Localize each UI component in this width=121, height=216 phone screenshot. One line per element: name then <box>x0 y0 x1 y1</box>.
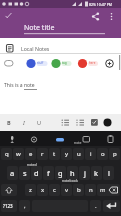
staticText: g <box>58 168 63 178</box>
staticText: tag <box>62 61 67 65</box>
button[interactable]: o <box>97 148 108 160</box>
staticText: notebook <box>62 178 78 183</box>
staticText: e <box>29 150 33 158</box>
staticText: p <box>113 150 117 158</box>
button[interactable] <box>103 200 120 212</box>
button[interactable]: y <box>61 148 72 160</box>
button[interactable]: n <box>85 184 96 196</box>
button[interactable]: v <box>61 184 72 196</box>
staticText: x <box>41 186 45 194</box>
staticText: h <box>70 168 75 178</box>
button[interactable]: p <box>109 148 120 160</box>
button[interactable]: t <box>49 148 60 160</box>
staticText: y <box>65 150 69 158</box>
button[interactable]: I <box>23 119 25 126</box>
staticText: stuff <box>37 61 44 65</box>
staticText: a <box>10 168 15 178</box>
button[interactable]: b <box>73 184 84 196</box>
staticText: s <box>23 168 27 178</box>
button[interactable]: w <box>13 148 24 160</box>
staticText: r <box>41 150 44 158</box>
button[interactable]: l <box>103 166 114 180</box>
button[interactable] <box>105 184 120 196</box>
button[interactable]: s <box>19 166 30 180</box>
button[interactable]: g <box>55 166 66 180</box>
button[interactable]: c <box>49 184 60 196</box>
staticText: f <box>47 168 50 178</box>
button[interactable]: a <box>7 166 18 180</box>
staticText: Local Notes <box>21 45 50 52</box>
staticText: This is a note <box>4 82 35 89</box>
button[interactable] <box>89 117 100 128</box>
button[interactable]: h <box>67 166 78 180</box>
button[interactable] <box>1 184 17 196</box>
staticText: j <box>84 168 86 178</box>
button[interactable] <box>4 60 14 67</box>
staticText: c <box>53 186 56 194</box>
staticText: 82% 10:47 PM <box>89 2 112 7</box>
staticText: t <box>53 150 56 158</box>
staticText: i <box>90 150 92 158</box>
button[interactable] <box>3 10 15 22</box>
button[interactable]: , <box>19 200 30 212</box>
staticText: u <box>77 150 81 158</box>
button[interactable]: Local Notes <box>0 42 121 53</box>
button[interactable]: u <box>73 148 84 160</box>
button[interactable]: e <box>25 148 36 160</box>
button[interactable] <box>90 11 101 22</box>
button[interactable] <box>106 11 117 22</box>
button[interactable] <box>102 117 113 128</box>
staticText: here <box>89 61 96 65</box>
staticText: z <box>29 186 32 194</box>
button[interactable]: f <box>43 166 54 180</box>
staticText: . <box>95 202 97 210</box>
staticText: o <box>101 150 105 158</box>
staticText: d <box>34 168 39 178</box>
staticText: k <box>94 168 99 178</box>
button[interactable]: i <box>85 148 96 160</box>
staticText: b <box>77 186 81 194</box>
button[interactable]: d <box>31 166 42 180</box>
button[interactable]: U <box>37 119 42 126</box>
button[interactable] <box>60 117 71 128</box>
staticText: n <box>89 186 93 194</box>
button[interactable]: here <box>77 58 99 70</box>
button[interactable]: stuff <box>26 58 48 70</box>
staticText: m <box>100 186 106 194</box>
button[interactable]: m <box>97 184 108 196</box>
button[interactable]: r <box>37 148 48 160</box>
button[interactable]: B <box>7 119 11 126</box>
staticText: Note title <box>24 23 55 33</box>
button[interactable]: q <box>1 148 12 160</box>
staticText: l <box>108 168 110 178</box>
staticText: , <box>24 202 26 210</box>
button[interactable]: z <box>25 184 36 196</box>
staticText: ?123 <box>3 203 13 209</box>
button[interactable]: x <box>37 184 48 196</box>
staticText: note <box>74 140 82 145</box>
button[interactable]: . <box>90 200 101 212</box>
button[interactable]: k <box>91 166 102 180</box>
button[interactable]: j <box>79 166 90 180</box>
staticText: noted <box>27 162 37 167</box>
staticText: q <box>5 150 9 158</box>
staticText: w <box>16 150 21 158</box>
button[interactable] <box>75 117 86 128</box>
staticText: v <box>65 186 69 194</box>
button[interactable]: tag <box>51 58 73 70</box>
button[interactable]: ?123 <box>1 200 17 212</box>
button[interactable] <box>104 58 116 70</box>
